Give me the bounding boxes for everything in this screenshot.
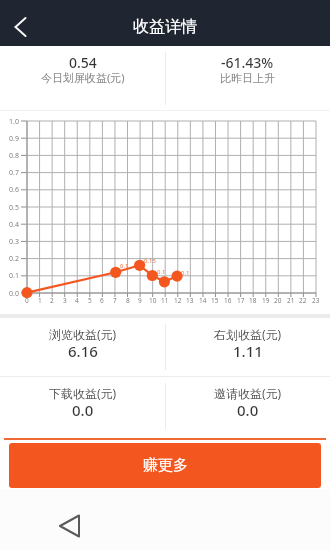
staticText: 0.4 (9, 220, 19, 229)
staticText: 16 (224, 296, 232, 305)
staticText: 12 (174, 296, 182, 305)
staticText: 0.8 (9, 151, 19, 160)
staticText: 10 (149, 296, 157, 305)
staticText: 13 (186, 296, 194, 305)
staticText: 21 (287, 296, 295, 305)
staticText: 2 (50, 296, 54, 305)
staticText: 9 (138, 296, 142, 305)
staticText: 19 (262, 296, 270, 305)
staticText: 今日划屏收益(元) (41, 70, 125, 85)
staticText: 18 (249, 296, 257, 305)
staticText: 邀请收益(元) (214, 385, 282, 401)
staticText: 0.1 (9, 271, 19, 280)
staticText: 0.6 (9, 185, 19, 194)
button[interactable] (48, 505, 90, 547)
staticText: 右划收益(元) (214, 326, 282, 342)
staticText: 22 (299, 296, 307, 305)
button[interactable]: 赚更多 (9, 443, 321, 488)
staticText: 浏览收益(元) (49, 326, 117, 342)
button[interactable] (165, 46, 330, 110)
staticText: 0.5 (9, 203, 19, 212)
staticText: 赚更多 (143, 456, 188, 475)
staticText: 0.0 (9, 289, 19, 298)
button[interactable]: 浏览收益(元) (0, 318, 165, 376)
staticText: 7 (113, 296, 117, 305)
staticText: 1.0 (9, 117, 19, 126)
staticText: 17 (237, 296, 245, 305)
button[interactable] (0, 7, 40, 46)
staticText: 1.11 (233, 341, 263, 361)
button[interactable]: 右划收益(元) (165, 318, 330, 376)
staticText: 0 (25, 296, 29, 305)
staticText: 6 (100, 296, 104, 305)
staticText: 0.9 (9, 134, 19, 143)
button[interactable]: 邀请收益(元) (165, 377, 330, 436)
staticText: 比昨日上升 (220, 71, 275, 85)
staticText: 下载收益(元) (49, 385, 117, 401)
staticText: 15 (211, 296, 219, 305)
staticText: 3 (63, 296, 67, 305)
staticText: 0.0 (237, 400, 259, 420)
staticText: 0.54 (69, 53, 97, 72)
staticText: 14 (199, 296, 207, 305)
staticText: 0.15 (144, 257, 156, 265)
staticText: 11 (161, 296, 169, 305)
staticText: 0.1 (120, 262, 129, 270)
staticText: 1 (38, 296, 42, 305)
staticText: 4 (75, 296, 79, 305)
staticText: 0.0 (72, 400, 94, 420)
staticText: -61.43% (221, 53, 274, 72)
staticText: 0.2 (9, 254, 19, 263)
button[interactable] (0, 46, 165, 110)
staticText: 0.1 (181, 269, 190, 277)
staticText: 20 (274, 296, 282, 305)
staticText: 收益详情 (133, 17, 197, 37)
staticText: 0.7 (9, 168, 19, 177)
staticText: 23 (312, 296, 320, 305)
staticText: 6.16 (68, 341, 98, 361)
button[interactable]: 下载收益(元) (0, 377, 165, 436)
staticText: 8 (126, 296, 130, 305)
staticText: 0.3 (9, 237, 19, 246)
staticText: 0.1 (157, 268, 166, 276)
staticText: 5 (88, 296, 92, 305)
